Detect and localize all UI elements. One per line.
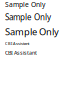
staticText: Sample Only [5, 12, 51, 22]
staticText: Sample Only [5, 0, 45, 9]
staticText: Sample Only [5, 25, 59, 38]
staticText: CBI Assistant [5, 41, 29, 46]
staticText: CBI Assistant [5, 49, 37, 56]
